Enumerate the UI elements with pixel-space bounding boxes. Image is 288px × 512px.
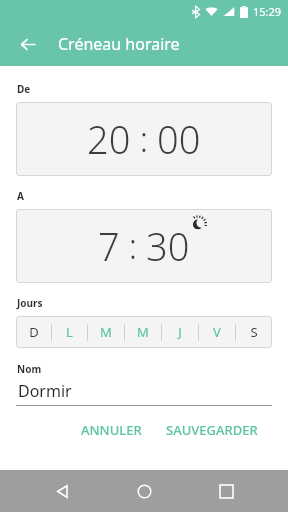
staticText: V <box>213 323 221 341</box>
button[interactable]: Dormir <box>16 380 272 406</box>
button[interactable]: L <box>52 316 87 348</box>
staticText: Nom <box>17 362 42 376</box>
button[interactable]: 20 <box>16 102 272 176</box>
staticText: ANNULER <box>81 421 142 439</box>
staticText: 30 <box>146 220 190 272</box>
button[interactable]: Back <box>42 471 82 511</box>
staticText: Créneau horaire <box>58 33 180 55</box>
staticText: S <box>250 323 258 341</box>
staticText: A <box>17 189 24 203</box>
button[interactable]: M <box>88 316 124 348</box>
button[interactable]: D <box>16 316 51 348</box>
staticText: 00 <box>157 113 201 165</box>
staticText: M <box>137 323 149 341</box>
staticText: L <box>66 323 73 341</box>
staticText: Dormir <box>18 380 72 402</box>
staticText: 20 <box>87 113 131 165</box>
staticText: D <box>29 323 39 341</box>
button[interactable]: Home <box>124 471 164 511</box>
staticText: Jours <box>17 296 43 310</box>
staticText: J <box>178 323 182 341</box>
staticText: : <box>131 116 157 162</box>
button[interactable]: S <box>236 316 272 348</box>
staticText: M <box>100 323 112 341</box>
button[interactable]: SAUVEGARDER <box>158 414 266 446</box>
staticText: 15:29 <box>253 4 282 19</box>
button[interactable]: J <box>162 316 198 348</box>
staticText: : <box>120 223 146 269</box>
staticText: 7 <box>98 220 120 272</box>
button[interactable]: M <box>125 316 161 348</box>
button[interactable]: Back <box>10 26 46 62</box>
button[interactable]: Recent apps <box>206 471 246 511</box>
button[interactable]: ANNULER <box>73 414 150 446</box>
button[interactable]: V <box>199 316 235 348</box>
staticText: SAUVEGARDER <box>166 421 258 439</box>
staticText: De <box>17 82 31 96</box>
button[interactable]: 7 <box>16 209 272 283</box>
